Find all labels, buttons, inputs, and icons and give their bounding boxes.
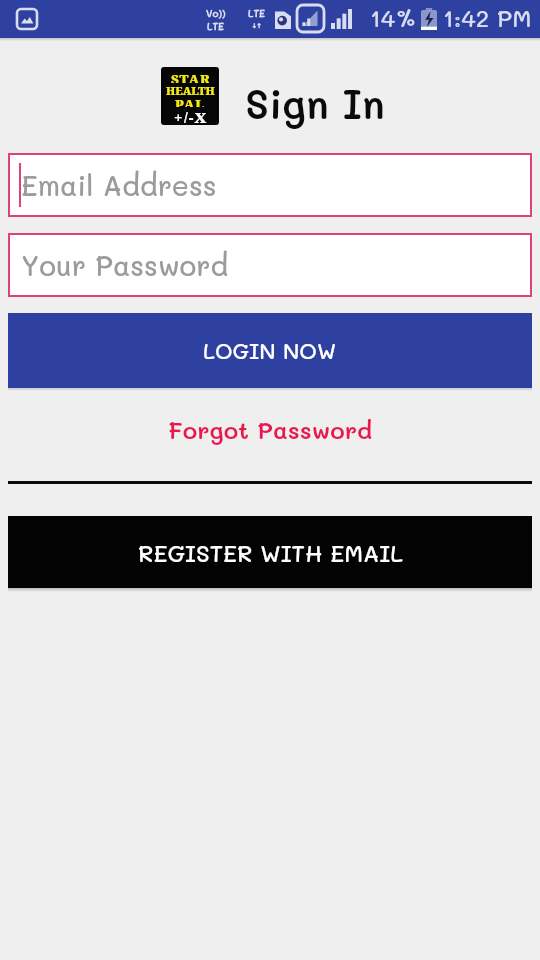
staticText: 1:42 PM xyxy=(443,2,532,33)
button[interactable]: LOGIN NOW xyxy=(8,313,532,388)
staticText: LOGIN NOW xyxy=(203,336,337,365)
staticText: +/-X xyxy=(174,107,208,123)
staticText: LTE xyxy=(207,19,225,32)
staticText: Forgot Password xyxy=(168,414,373,445)
button[interactable]: Forgot Password xyxy=(0,414,540,445)
staticText: ↓↑ xyxy=(252,19,262,31)
button[interactable]: Your Password xyxy=(8,233,532,297)
staticText: REGISTER WITH EMAIL xyxy=(138,537,403,568)
staticText: Email Address xyxy=(21,167,217,203)
staticText: HEALTH xyxy=(166,83,215,95)
button[interactable]: REGISTER WITH EMAIL xyxy=(8,516,532,588)
staticText: 14% xyxy=(370,2,417,33)
button[interactable]: Email Address xyxy=(8,153,532,217)
staticText: Your Password xyxy=(21,247,229,283)
staticText: Vo)) xyxy=(206,6,226,19)
staticText: PAL xyxy=(175,95,206,107)
staticText: Sign In xyxy=(245,77,385,129)
staticText: LTE xyxy=(248,6,266,19)
staticText: STAR xyxy=(171,70,211,83)
